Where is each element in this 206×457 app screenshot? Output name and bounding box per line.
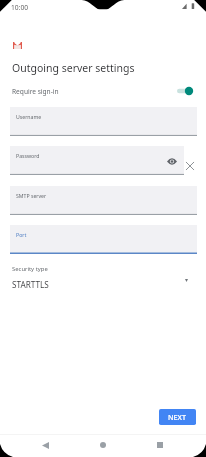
staticText: SMTP server (16, 192, 47, 199)
staticText: Outgoing server settings (12, 61, 135, 75)
button[interactable]: Require sign-in toggle (174, 85, 190, 97)
button[interactable]: Require sign-in (0, 84, 206, 98)
staticText: Require sign-in (12, 87, 59, 96)
button[interactable]: Port (10, 225, 197, 254)
staticText: Password (16, 152, 40, 159)
button[interactable]: Recent apps (153, 438, 167, 452)
staticText: Security type (12, 265, 48, 273)
button[interactable]: Show password (167, 158, 177, 165)
button[interactable]: Home (96, 438, 110, 452)
button[interactable]: Username (10, 107, 197, 136)
button[interactable]: Security type (0, 262, 206, 292)
staticText: Port (16, 231, 27, 238)
staticText: STARTTLS (12, 279, 49, 290)
button[interactable]: Clear password (184, 160, 196, 172)
staticText: Username (16, 113, 42, 120)
button[interactable]: NEXT (159, 409, 196, 425)
button[interactable]: Back (38, 438, 52, 452)
button[interactable]: SMTP server (10, 186, 197, 215)
staticText: NEXT (168, 412, 187, 422)
staticText: 10:00 (11, 3, 29, 12)
button[interactable]: Password (10, 146, 184, 175)
